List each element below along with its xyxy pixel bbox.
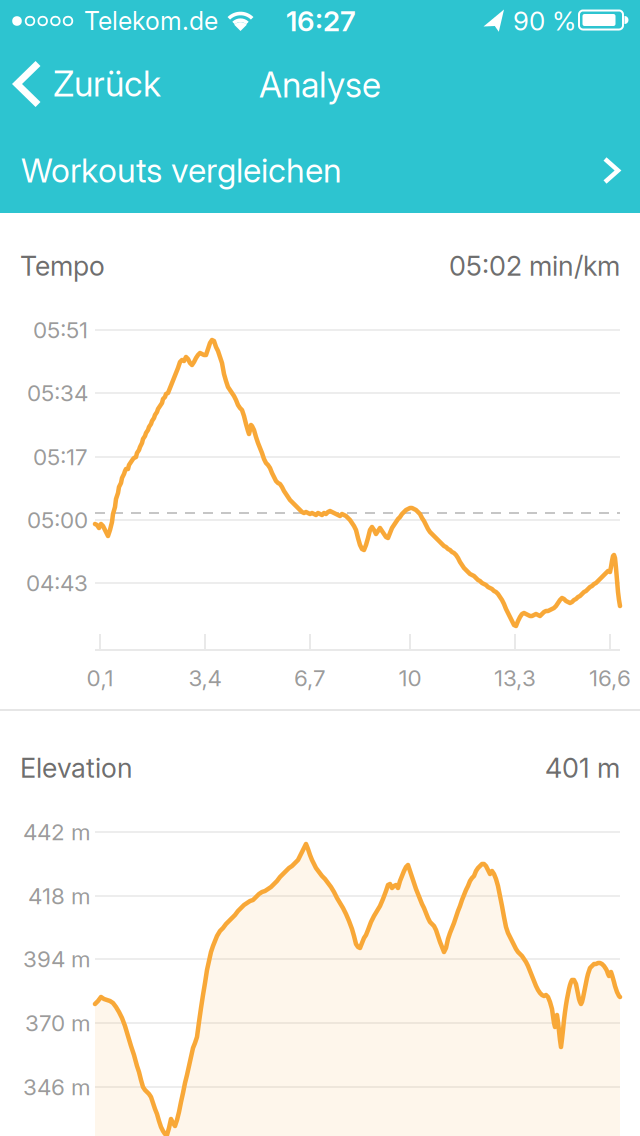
staticText: 05:34 — [27, 379, 88, 407]
staticText: Zurück — [53, 63, 161, 105]
staticText: 05:00 — [27, 506, 88, 534]
staticText: 05:02 min/km — [449, 250, 620, 282]
staticText: 370 m — [25, 1009, 91, 1037]
staticText: 16:27 — [286, 4, 356, 38]
staticText: 401 m — [545, 752, 620, 784]
staticText: 0,1 — [86, 664, 113, 692]
staticText: 346 m — [23, 1073, 91, 1101]
staticText: 05:17 — [33, 443, 88, 471]
staticText: 13,3 — [494, 664, 536, 692]
staticText: 16,6 — [589, 664, 631, 692]
staticText: Tempo — [20, 250, 105, 282]
staticText: Analyse — [259, 64, 381, 106]
staticText: 418 m — [28, 882, 91, 910]
staticText: 05:51 — [33, 316, 88, 344]
staticText: 10 — [398, 664, 421, 692]
button[interactable]: Workouts vergleichen — [0, 128, 640, 213]
staticText: 3,4 — [188, 664, 221, 692]
staticText: 04:43 — [26, 569, 88, 597]
staticText: 442 m — [23, 818, 91, 846]
staticText: 6,7 — [294, 664, 326, 692]
staticText: Elevation — [20, 752, 133, 784]
staticText: 394 m — [23, 945, 91, 973]
staticText: 90 % — [513, 5, 576, 37]
staticText: Workouts vergleichen — [21, 150, 342, 190]
staticText: Telekom.de — [84, 6, 218, 36]
button[interactable]: Back — [0, 40, 161, 128]
